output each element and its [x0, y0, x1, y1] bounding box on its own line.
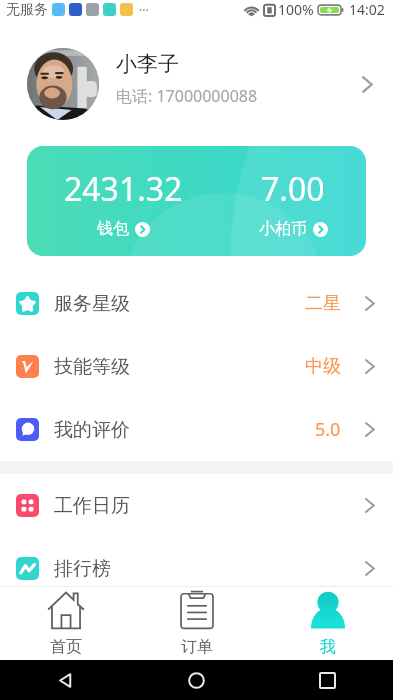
staticText: 工作日历	[54, 494, 130, 518]
staticText: 100%	[278, 0, 314, 19]
staticText: 我的评价	[54, 418, 130, 442]
button[interactable]: 服务星级	[0, 272, 393, 335]
staticText: 排行榜	[54, 557, 111, 581]
button[interactable]: 2431.32	[39, 146, 208, 256]
button[interactable]: 首页	[0, 587, 131, 660]
staticText: 小李子	[116, 51, 179, 77]
button[interactable]: Recents	[262, 660, 393, 700]
staticText: 小柏币	[259, 219, 307, 239]
staticText: 首页	[50, 637, 82, 657]
button[interactable]: 技能等级	[0, 335, 393, 398]
staticText: 服务星级	[54, 292, 130, 316]
staticText: 中级	[305, 355, 341, 378]
staticText: 钱包	[97, 219, 129, 239]
button[interactable]: 工作日历	[0, 474, 393, 537]
staticText: 2431.32	[64, 167, 183, 211]
staticText: 无服务	[6, 1, 48, 19]
button[interactable]: Home	[131, 660, 262, 700]
button[interactable]: 小李子	[0, 32, 393, 135]
staticText: 7.00	[261, 167, 325, 211]
staticText: 电话: 17000000088	[116, 85, 258, 107]
staticText: 5.0	[315, 417, 341, 442]
button[interactable]: 我的评价	[0, 398, 393, 461]
button[interactable]: Back	[0, 660, 131, 700]
button[interactable]: 订单	[131, 587, 262, 660]
staticText: 14:02	[349, 0, 385, 19]
staticText: 我	[320, 637, 336, 657]
staticText: 技能等级	[54, 355, 130, 379]
staticText: 二星	[305, 292, 341, 315]
button[interactable]: 排行榜	[0, 537, 393, 600]
button[interactable]: 我	[262, 587, 393, 660]
button[interactable]: 7.00	[208, 146, 366, 256]
staticText: 订单	[181, 637, 213, 657]
staticText: ···	[139, 2, 149, 18]
